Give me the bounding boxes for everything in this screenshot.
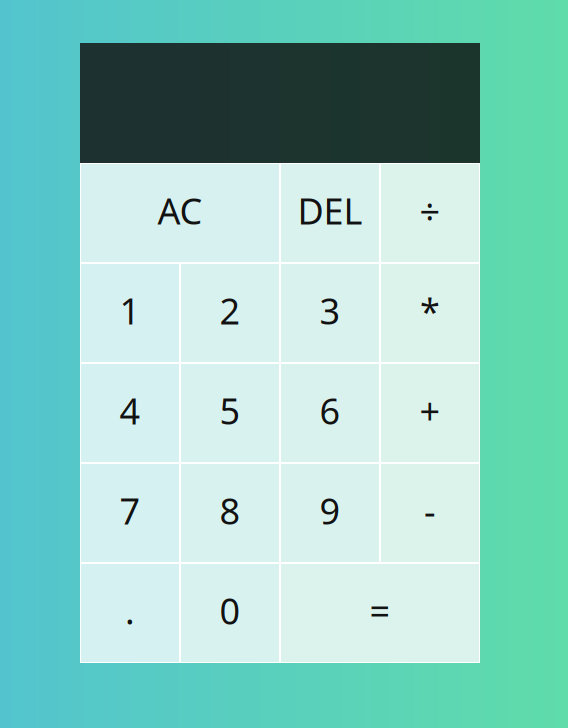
button[interactable]: ÷ — [381, 164, 479, 262]
button[interactable]: 4 — [81, 364, 179, 462]
button[interactable]: 0 — [181, 564, 279, 662]
staticText: + — [419, 387, 440, 434]
staticText: 7 — [119, 487, 140, 534]
staticText: 4 — [119, 387, 140, 434]
button[interactable]: = — [281, 564, 479, 662]
button[interactable]: 1 — [81, 264, 179, 362]
staticText: 6 — [319, 387, 340, 434]
staticText: - — [424, 487, 436, 534]
button[interactable]: 5 — [181, 364, 279, 462]
staticText: 3 — [319, 287, 340, 334]
button[interactable]: * — [381, 264, 479, 362]
staticText: 9 — [319, 487, 340, 534]
button[interactable]: DEL — [281, 164, 379, 262]
staticText: ÷ — [419, 187, 440, 234]
staticText: 1 — [119, 287, 140, 334]
staticText: * — [420, 287, 440, 334]
button[interactable]: 8 — [181, 464, 279, 562]
button[interactable]: AC — [81, 164, 279, 262]
button[interactable]: 9 — [281, 464, 379, 562]
button[interactable]: 7 — [81, 464, 179, 562]
staticText: 0 — [219, 587, 240, 634]
button[interactable]: 6 — [281, 364, 379, 462]
button[interactable]: + — [381, 364, 479, 462]
staticText: DEL — [297, 187, 362, 234]
staticText: AC — [157, 187, 202, 234]
staticText: 2 — [219, 287, 240, 334]
staticText: 8 — [219, 487, 240, 534]
staticText: . — [125, 587, 135, 634]
button[interactable]: 2 — [181, 264, 279, 362]
button[interactable]: 3 — [281, 264, 379, 362]
staticText: 5 — [219, 387, 240, 434]
staticText: = — [369, 587, 390, 634]
button[interactable]: . — [81, 564, 179, 662]
button[interactable]: - — [381, 464, 479, 562]
